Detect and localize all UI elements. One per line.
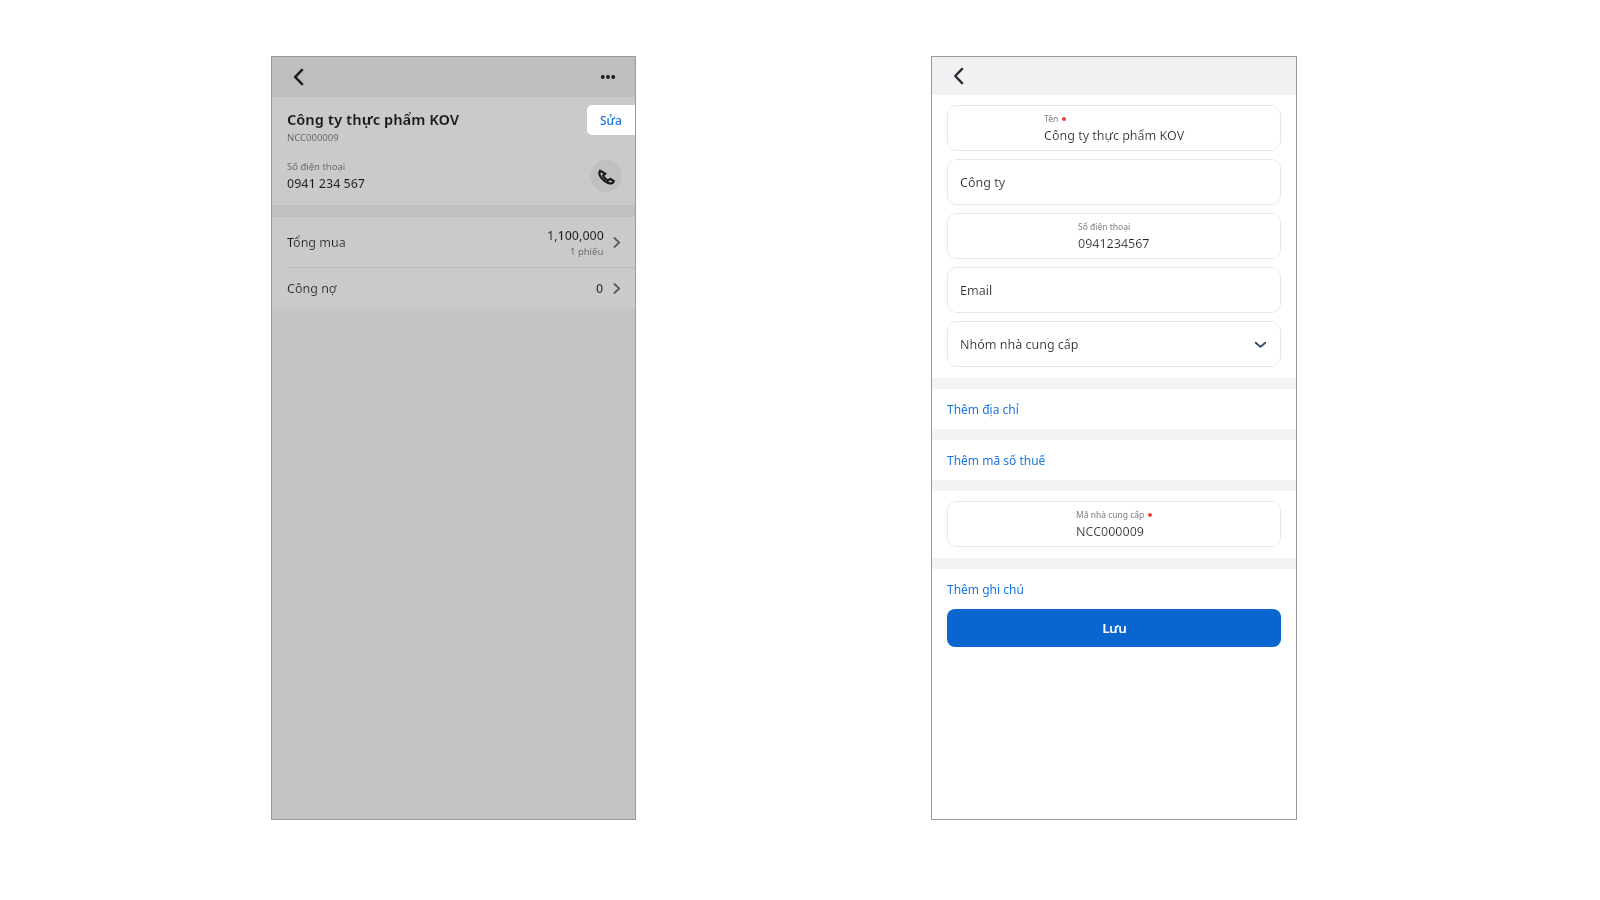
button[interactable]: More options	[593, 62, 623, 92]
button[interactable]: Thêm địa chỉ	[932, 389, 1296, 429]
button[interactable]: Email	[947, 267, 1281, 313]
button[interactable]: Mã nhà cung cấp	[947, 501, 1281, 547]
staticText: 1 phiếu	[570, 245, 604, 258]
staticText: Thêm địa chỉ	[947, 401, 1019, 417]
staticText: Công nợ	[287, 280, 596, 297]
button[interactable]: Back	[284, 62, 314, 92]
staticText: 0941 234 567	[287, 175, 366, 192]
button[interactable]: Back	[944, 61, 974, 91]
staticText: Số điện thoại	[1078, 221, 1131, 233]
button[interactable]: Call	[590, 160, 622, 192]
staticText: Tên	[1044, 113, 1059, 125]
staticText: Sửa	[600, 112, 622, 128]
staticText: Nhóm nhà cung cấp	[960, 336, 1253, 353]
button[interactable]: Tên	[947, 105, 1281, 151]
button[interactable]: Nhóm nhà cung cấp	[947, 321, 1281, 367]
button[interactable]: Lưu	[947, 609, 1281, 647]
staticText: Mã nhà cung cấp	[1076, 509, 1145, 521]
staticText: Công ty thực phẩm KOV	[1044, 127, 1185, 144]
staticText: Lưu	[1102, 619, 1127, 637]
staticText: 0941234567	[1078, 235, 1150, 252]
staticText: Số điện thoại	[287, 160, 346, 173]
staticText: NCC000009	[1076, 523, 1144, 540]
button[interactable]: Thêm ghi chú	[932, 569, 1296, 609]
staticText: Công ty thực phẩm KOV	[287, 109, 460, 129]
staticText: NCC000009	[287, 131, 339, 144]
staticText: Email	[960, 282, 1268, 299]
button[interactable]: Thêm mã số thuế	[932, 440, 1296, 480]
staticText: 0	[596, 280, 604, 297]
button[interactable]: Sửa	[587, 105, 635, 135]
button[interactable]: Số điện thoại	[947, 213, 1281, 259]
staticText: 1,100,000	[547, 227, 604, 244]
button[interactable]: Tổng mua	[272, 217, 635, 267]
button[interactable]: Công nợ	[272, 268, 635, 309]
button[interactable]: Công ty	[947, 159, 1281, 205]
staticText: Công ty	[960, 174, 1268, 191]
staticText: Tổng mua	[287, 234, 547, 251]
staticText: Thêm mã số thuế	[947, 452, 1046, 468]
staticText: Thêm ghi chú	[947, 581, 1024, 597]
